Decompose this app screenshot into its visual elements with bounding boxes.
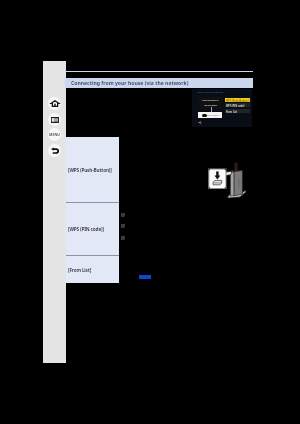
button[interactable]: From List [225, 109, 250, 113]
button[interactable]: Menu [48, 128, 61, 141]
staticText: MENU [49, 132, 61, 137]
staticText: Select connection method [197, 91, 224, 94]
staticText: Connecting from your house (via the netw… [71, 80, 189, 87]
staticText: WPS Router [207, 114, 220, 117]
staticText: From List [226, 110, 238, 113]
button[interactable]: Display [48, 113, 61, 126]
button[interactable]: [WPS (PIN code)] [66, 203, 119, 255]
staticText: [From List] [68, 267, 92, 273]
button[interactable]: WPS (Push-Button) [225, 98, 250, 102]
staticText: Press the button on the WPS device [199, 99, 222, 107]
button[interactable]: Home [48, 97, 61, 110]
staticText: WPS (PIN code) [226, 104, 245, 107]
staticText: [WPS (Push-Button)] [68, 167, 112, 173]
button[interactable]: Back [48, 144, 61, 157]
button[interactable]: WPS (PIN code) [225, 103, 250, 107]
staticText: WPS (Push-Button) [226, 99, 249, 102]
staticText: [WPS (PIN code)] [68, 226, 104, 232]
button[interactable]: [From List] [66, 256, 119, 283]
button[interactable]: [WPS (Push-Button)] [66, 137, 119, 202]
